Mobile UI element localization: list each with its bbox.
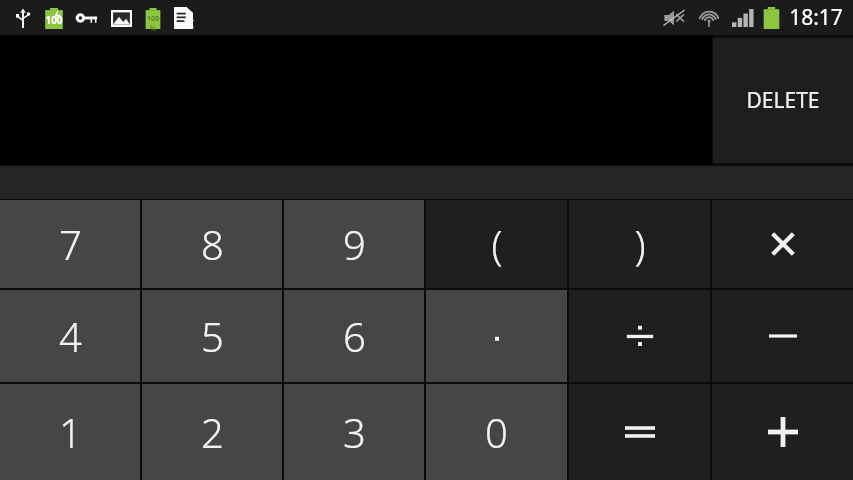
button[interactable]: Multiply (712, 200, 853, 288)
staticText: 9 (343, 217, 366, 271)
staticText: 8 (201, 217, 224, 271)
other: 7 (59, 217, 82, 271)
button[interactable]: 5 (142, 290, 282, 382)
staticText: 6 (343, 309, 366, 363)
other: 8 (201, 217, 224, 271)
staticText: ( (491, 217, 503, 271)
other: Divide (625, 321, 655, 351)
button[interactable]: DELETE (713, 38, 853, 163)
button[interactable]: ) (569, 200, 710, 288)
other: 1 (59, 405, 82, 459)
staticText: 3 (343, 405, 366, 459)
button[interactable]: 9 (284, 200, 424, 288)
staticText: 1 (59, 405, 82, 459)
button[interactable]: 7 (0, 200, 140, 288)
button[interactable]: Decimal point (426, 290, 567, 382)
button[interactable]: Plus (712, 384, 853, 480)
other: 9 (343, 217, 366, 271)
other: 2 (201, 405, 224, 459)
staticText: 4 (59, 309, 82, 363)
button[interactable]: ( (426, 200, 567, 288)
other: Multiply (770, 231, 796, 257)
button[interactable]: 8 (142, 200, 282, 288)
staticText: DELETE (746, 86, 820, 115)
button[interactable]: 0 (426, 384, 567, 480)
staticText: 7 (59, 217, 82, 271)
other: ( (491, 217, 503, 271)
button[interactable]: 1 (0, 384, 140, 480)
staticText: 0 (485, 405, 508, 459)
other: Equals (625, 423, 655, 441)
other: 6 (343, 309, 366, 363)
other: 0 (485, 405, 508, 459)
button[interactable]: 6 (284, 290, 424, 382)
other: Minus (769, 331, 797, 341)
button[interactable]: 3 (284, 384, 424, 480)
staticText: 5 (201, 309, 224, 363)
staticText: 100% (145, 14, 161, 34)
staticText: 2 (201, 405, 224, 459)
staticText: ) (634, 217, 646, 271)
other: 3 (343, 405, 366, 459)
button[interactable]: Minus (712, 290, 853, 382)
button[interactable]: Divide (569, 290, 710, 382)
staticText: 100 (45, 13, 63, 27)
other: ) (634, 217, 646, 271)
other: Plus (768, 417, 798, 447)
other: 5 (201, 309, 224, 363)
button[interactable]: 4 (0, 290, 140, 382)
button[interactable]: 2 (142, 384, 282, 480)
staticText: 18:17 (789, 3, 843, 32)
button[interactable]: Equals (569, 384, 710, 480)
other: 4 (59, 309, 82, 363)
other: Decimal point (493, 332, 501, 340)
